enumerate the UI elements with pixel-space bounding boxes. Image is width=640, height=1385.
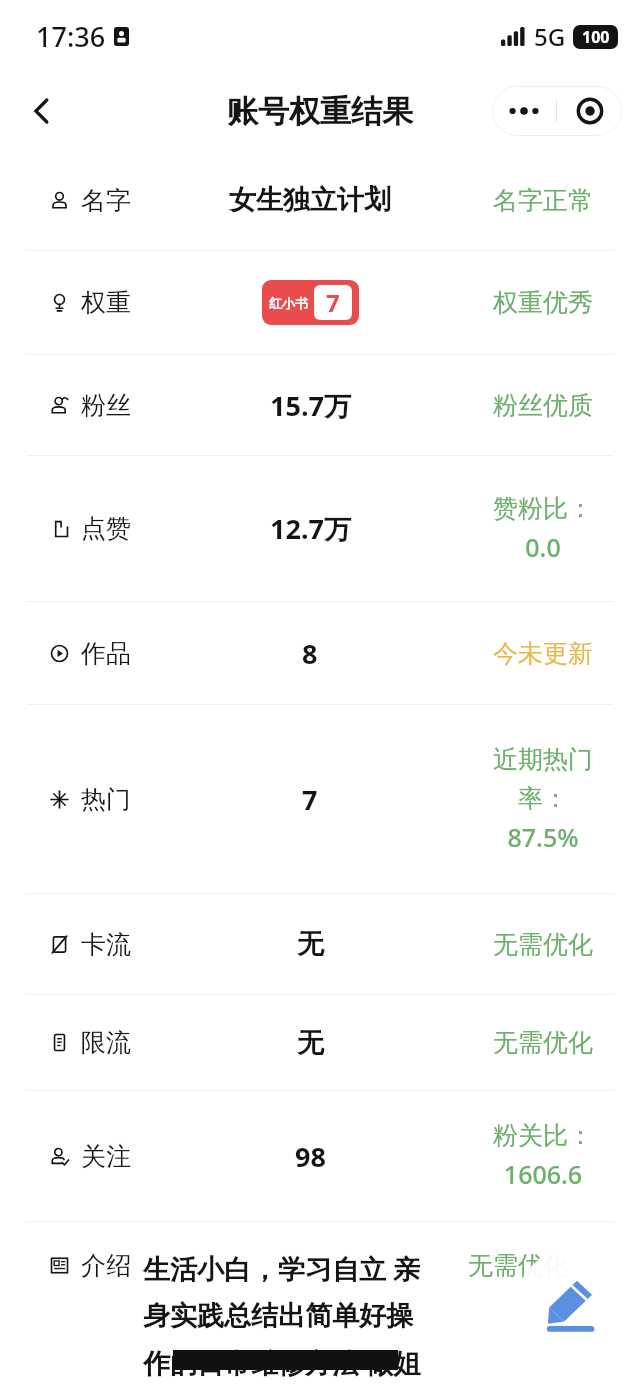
staticText: 名字 (81, 185, 131, 216)
button[interactable]: More options (492, 86, 556, 136)
staticText: 卡流 (81, 929, 131, 960)
button[interactable]: 名字 (0, 150, 640, 250)
staticText: 热门 (81, 784, 131, 815)
staticText: 点赞 (81, 513, 131, 544)
staticText: 7 (302, 781, 318, 818)
staticText: 8 (302, 635, 318, 672)
staticText: 15.7万 (270, 387, 351, 424)
staticText: 名字正常 (493, 185, 593, 216)
button[interactable]: Back (18, 87, 66, 135)
staticText: 无 (297, 1026, 324, 1060)
staticText: 17:36 (36, 18, 106, 55)
staticText: 无需优化 (493, 929, 593, 960)
staticText: 女生独立计划 (229, 183, 391, 217)
button[interactable]: 关注 (0, 1091, 640, 1221)
staticText: 关注 (81, 1141, 131, 1172)
staticText: 无需优化 (468, 1250, 568, 1281)
button[interactable]: 限流 (0, 995, 640, 1090)
staticText: 权重优秀 (493, 287, 593, 318)
staticText: 无需优化 (493, 1027, 593, 1058)
staticText: 粉关比： 1606.6 (493, 1120, 593, 1192)
staticText: 今未更新 (493, 638, 593, 669)
staticText: 账号权重结果 (227, 92, 413, 131)
button[interactable]: 点赞 (0, 456, 640, 601)
button[interactable]: 粉丝 (0, 355, 640, 455)
staticText: 粉丝优质 (493, 390, 593, 421)
staticText: 红小书 (269, 295, 308, 311)
button[interactable]: 权重 (0, 251, 640, 354)
button[interactable]: Edit (516, 1250, 624, 1358)
staticText: 7 (326, 286, 340, 319)
staticText: 介绍 (81, 1250, 131, 1281)
staticText: 限流 (81, 1027, 131, 1058)
button[interactable]: 卡流 (0, 894, 640, 994)
staticText: 赞粉比： 0.0 (493, 493, 593, 565)
staticText: 近期热门 率： 87.5% (493, 744, 593, 855)
staticText: 粉丝 (81, 390, 131, 421)
staticText: 无 (297, 927, 324, 961)
staticText: 98 (295, 1138, 326, 1175)
button[interactable]: Target (557, 86, 622, 136)
staticText: 5G (534, 20, 566, 53)
staticText: 12.7万 (270, 510, 351, 547)
staticText: 作品 (81, 638, 131, 669)
button[interactable]: 热门 (0, 705, 640, 893)
staticText: 生活小白，学习自立 亲 身实践总结出简单好操 作的日常维修方法 做姐 (143, 1250, 421, 1381)
button[interactable]: 作品 (0, 602, 640, 704)
staticText: 权重 (81, 287, 131, 318)
staticText: 100 (582, 26, 610, 48)
